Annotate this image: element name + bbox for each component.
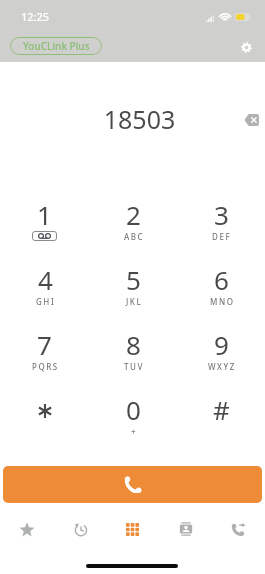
staticText: GHI (36, 296, 56, 307)
button[interactable]: Settings (234, 35, 259, 60)
button[interactable]: 1 (0, 189, 89, 254)
button[interactable]: 3 (177, 189, 265, 254)
button[interactable]: 4 (0, 254, 89, 319)
button[interactable]: Keypad (106, 513, 159, 545)
button[interactable]: # (177, 384, 265, 449)
staticText: 5 (126, 262, 141, 297)
staticText: 2 (126, 197, 141, 232)
button[interactable]: 6 (177, 254, 265, 319)
staticText: 12:25 (21, 9, 50, 24)
staticText: MNO (210, 296, 235, 307)
staticText: 7 (37, 327, 52, 362)
button[interactable]: 8 (89, 319, 177, 384)
button[interactable]: Backspace (240, 108, 262, 132)
staticText: JKL (126, 296, 143, 307)
staticText: DEF (212, 231, 232, 242)
button[interactable] (0, 384, 89, 449)
staticText: # (213, 392, 230, 427)
staticText: YouCLink Plus (23, 39, 90, 53)
button[interactable]: Favourites (0, 513, 53, 545)
staticText: TUV (124, 361, 144, 372)
staticText: 6 (214, 262, 229, 297)
button[interactable]: Contacts (159, 513, 212, 545)
staticText: WXYZ (208, 361, 236, 372)
staticText: 0 (126, 392, 141, 427)
staticText: + (131, 426, 138, 437)
button[interactable]: 7 (0, 319, 89, 384)
button[interactable]: 0 (89, 384, 177, 449)
button[interactable]: 5 (89, 254, 177, 319)
staticText: 8 (126, 327, 141, 362)
staticText: 3 (214, 197, 229, 232)
button[interactable]: Call (3, 466, 262, 503)
staticText: 9 (214, 327, 229, 362)
staticText: 4 (38, 262, 53, 297)
staticText: 18503 (7, 102, 265, 136)
staticText: ABC (124, 231, 145, 242)
button[interactable]: YouCLink Plus (10, 37, 102, 55)
button[interactable]: Recents (53, 513, 106, 545)
button[interactable]: 2 (89, 189, 177, 254)
button[interactable]: Call forwarding (212, 513, 265, 545)
button[interactable]: 9 (177, 319, 265, 384)
staticText: PQRS (32, 361, 59, 372)
staticText: 1 (37, 197, 52, 232)
